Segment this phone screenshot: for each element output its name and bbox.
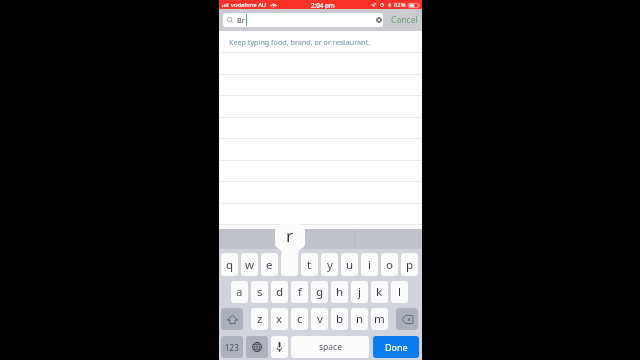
staticText: a — [236, 284, 243, 300]
button[interactable]: t — [301, 253, 318, 276]
button[interactable]: o — [381, 253, 398, 276]
button[interactable]: c — [291, 308, 308, 330]
staticText: r — [286, 224, 294, 247]
staticText: i — [368, 257, 371, 273]
button[interactable]: v — [311, 308, 328, 330]
button[interactable]: Backspace — [396, 308, 418, 330]
button[interactable]: Keep typing food, brand, or or restauran… — [219, 31, 422, 53]
staticText: space — [319, 341, 342, 353]
button[interactable]: k — [371, 281, 388, 303]
button[interactable] — [219, 225, 422, 246]
staticText: 2:04 pm — [311, 1, 335, 9]
button[interactable]: j — [351, 281, 368, 303]
button[interactable]: d — [271, 281, 288, 303]
staticText: Keep typing food, brand, or or restauran… — [229, 37, 371, 47]
staticText: x — [276, 311, 283, 327]
button[interactable]: a — [231, 281, 248, 303]
staticText: b — [336, 311, 344, 327]
staticText: y — [327, 257, 333, 273]
button[interactable]: Clear text — [376, 17, 382, 23]
staticText: v — [317, 311, 323, 327]
staticText: o — [386, 257, 393, 273]
button[interactable]: Cancel — [383, 12, 418, 28]
button[interactable]: h — [331, 281, 348, 303]
button[interactable]: p — [401, 253, 418, 276]
button[interactable]: space — [291, 336, 369, 358]
button[interactable]: Done — [373, 336, 419, 358]
button[interactable] — [219, 117, 422, 138]
button[interactable]: g — [311, 281, 328, 303]
staticText: l — [398, 284, 401, 300]
button[interactable]: f — [291, 281, 308, 303]
staticText: f — [298, 284, 302, 300]
staticText: p — [406, 257, 414, 273]
button[interactable]: s — [251, 281, 268, 303]
staticText: w — [245, 257, 255, 273]
staticText: t — [307, 257, 312, 273]
button[interactable]: u — [341, 253, 358, 276]
button[interactable] — [219, 74, 422, 95]
button[interactable]: m — [371, 308, 388, 330]
staticText: k — [376, 284, 383, 300]
staticText: m — [374, 311, 385, 327]
staticText: e — [266, 257, 273, 273]
button[interactable]: Shift — [221, 308, 243, 330]
staticText: 62% — [394, 1, 406, 9]
button[interactable]: w — [241, 253, 258, 276]
staticText: Done — [385, 341, 408, 353]
staticText: d — [276, 284, 284, 300]
button[interactable]: 123 — [221, 336, 243, 358]
staticText: c — [297, 311, 303, 327]
button[interactable]: q — [221, 253, 238, 276]
staticText: vodafone AU — [231, 1, 267, 9]
button[interactable]: i — [361, 253, 378, 276]
staticText: g — [316, 284, 324, 300]
staticText: j — [358, 284, 361, 300]
button[interactable]: n — [351, 308, 368, 330]
button[interactable]: r — [281, 253, 298, 276]
button[interactable]: y — [321, 253, 338, 276]
button[interactable]: x — [271, 308, 288, 330]
staticText: q — [226, 257, 234, 273]
staticText: 123 — [225, 342, 239, 353]
staticText: Cancel — [391, 14, 418, 26]
staticText: u — [346, 257, 354, 273]
button[interactable]: l — [391, 281, 408, 303]
button[interactable] — [219, 203, 422, 224]
button[interactable]: Br — [223, 13, 383, 27]
button[interactable]: Dictate — [271, 336, 288, 358]
staticText: s — [257, 284, 263, 300]
staticText: z — [257, 311, 263, 327]
button[interactable]: e — [261, 253, 278, 276]
button[interactable]: Change keyboard language — [246, 336, 268, 358]
staticText: n — [356, 311, 364, 327]
staticText: h — [336, 284, 344, 300]
button[interactable] — [219, 160, 422, 181]
staticText: Br — [237, 15, 245, 25]
button[interactable]: b — [331, 308, 348, 330]
button[interactable]: z — [251, 308, 268, 330]
